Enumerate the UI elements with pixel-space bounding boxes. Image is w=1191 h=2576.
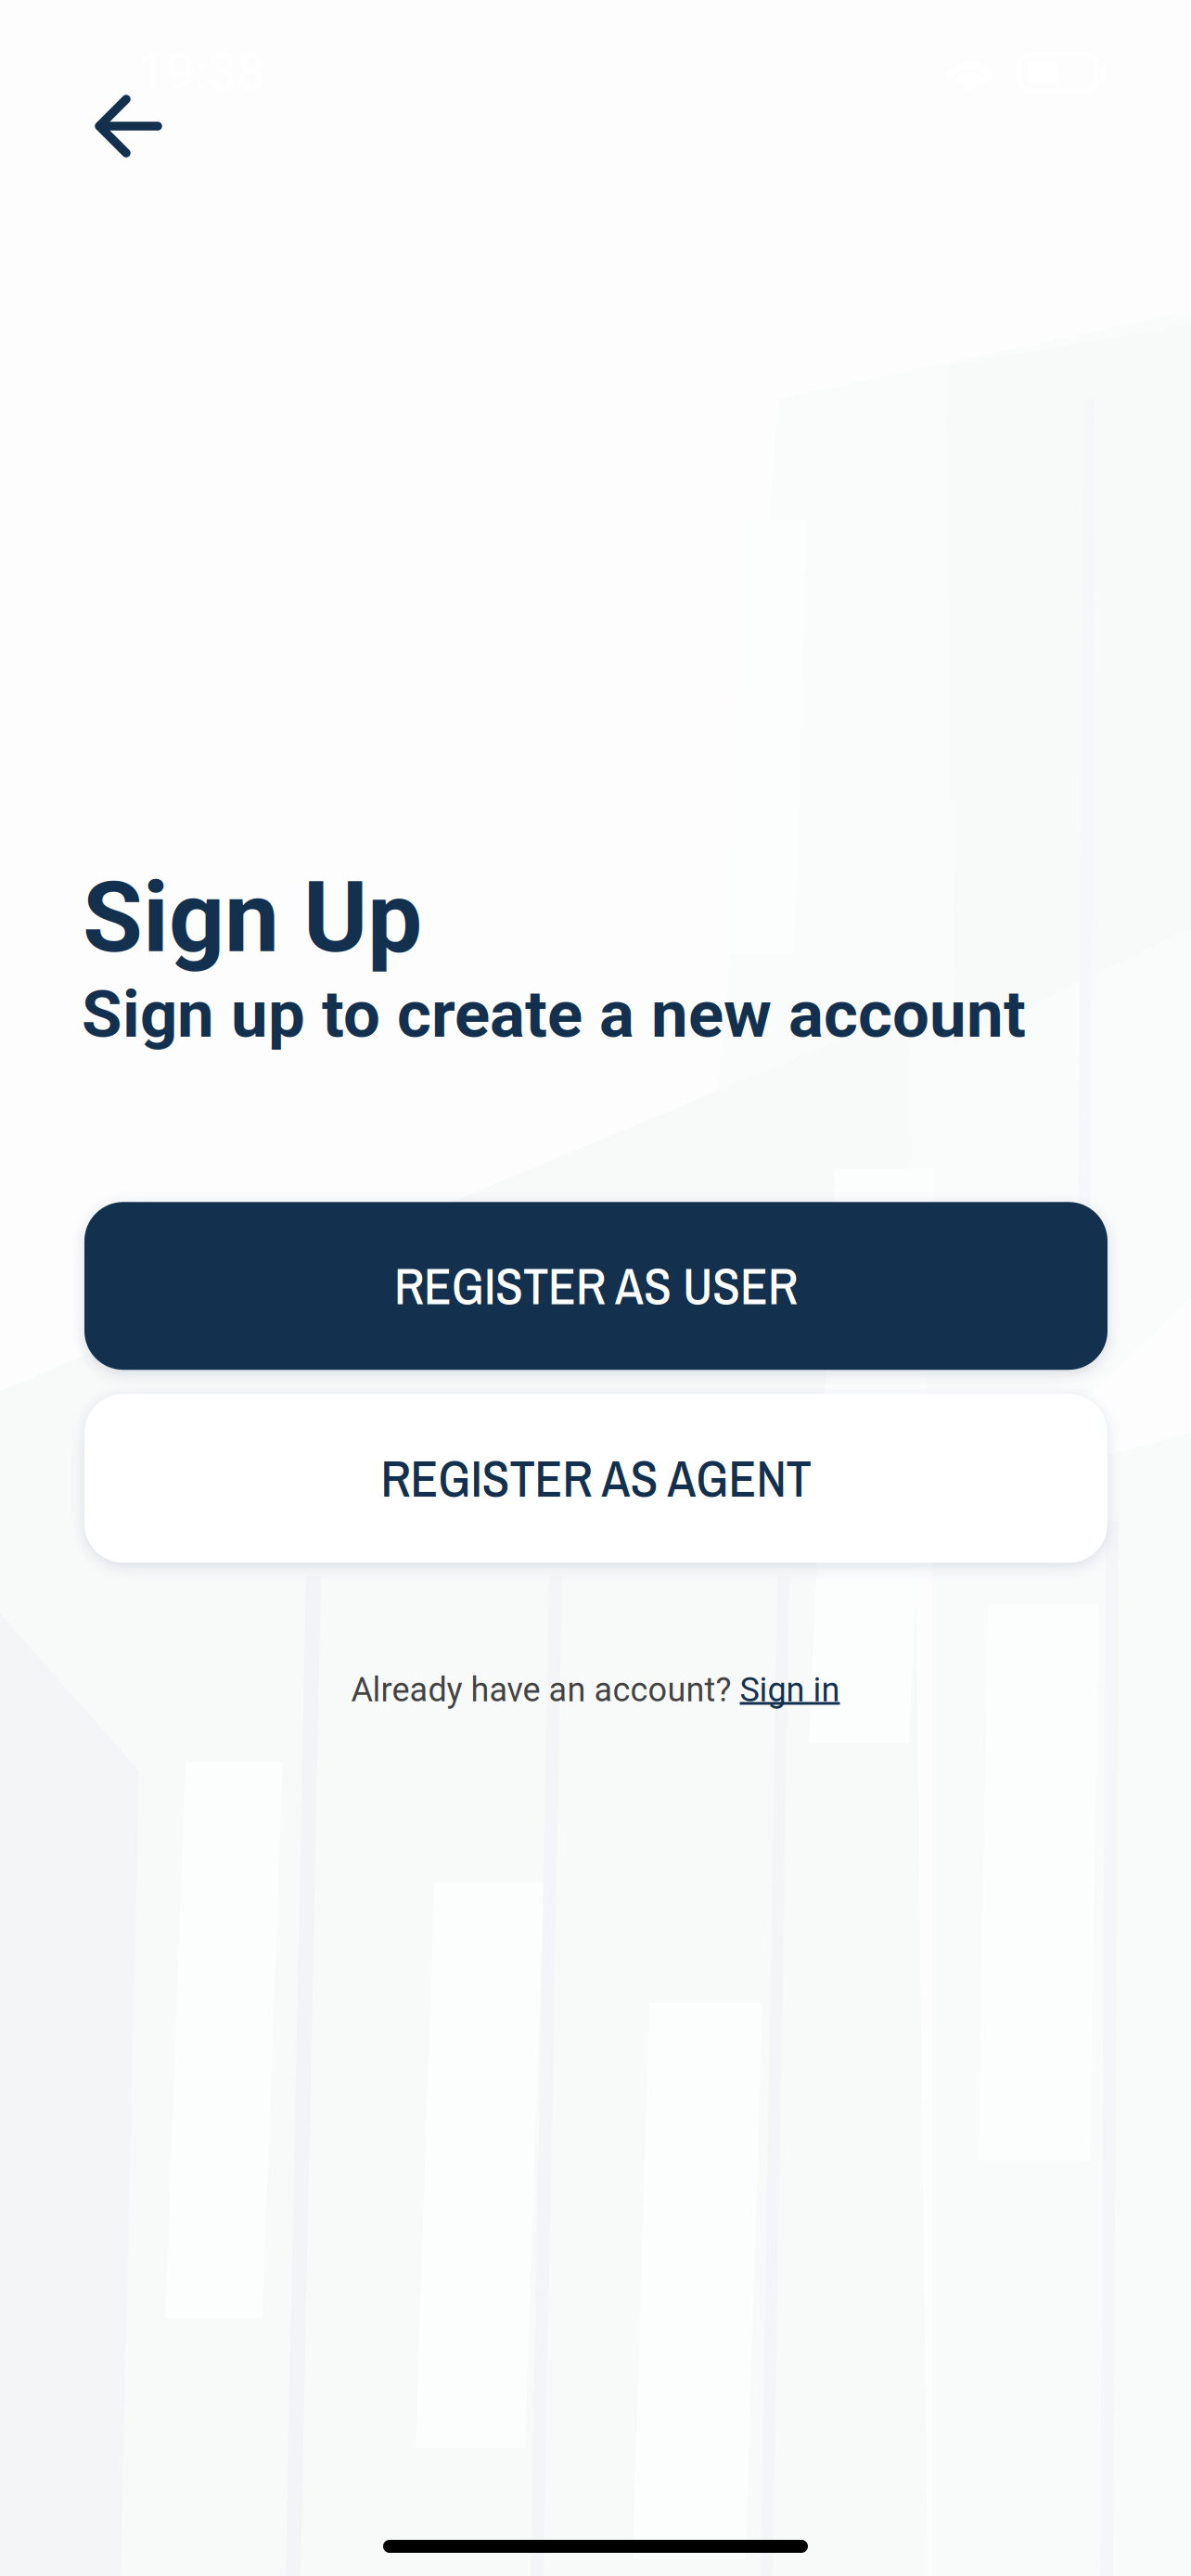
staticText: Already have an account? — [351, 1670, 740, 1709]
staticText: Sign Up — [83, 861, 422, 975]
staticText: REGISTER AS USER — [394, 1252, 798, 1320]
staticText: REGISTER AS AGENT — [381, 1444, 811, 1512]
staticText: Sign up to create a new account — [82, 976, 1026, 1053]
button[interactable]: Sign in — [740, 1670, 840, 1709]
button[interactable]: REGISTER AS AGENT — [84, 1394, 1108, 1563]
button[interactable]: REGISTER AS USER — [84, 1202, 1108, 1370]
button[interactable]: Back — [0, 0, 200, 185]
staticText: Sign in — [740, 1670, 840, 1709]
